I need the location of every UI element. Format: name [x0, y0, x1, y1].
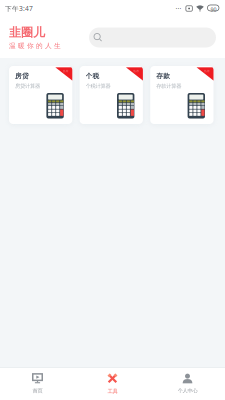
staticText: 韭圈儿 [9, 25, 45, 40]
staticText: 存款计算器 [156, 83, 181, 89]
staticText: 首页 [32, 387, 42, 394]
button[interactable]: 个人中心 [150, 368, 225, 400]
button[interactable]: 热荐 [150, 66, 213, 124]
staticText: ··· [176, 4, 182, 13]
staticText: 个税计算器 [86, 83, 111, 89]
staticText: 热荐 [133, 69, 139, 73]
staticText: 个人中心 [177, 387, 197, 394]
staticText: 存款 [156, 72, 170, 80]
staticText: 温 暖 你 的 人 生 [9, 42, 61, 50]
staticText: 房贷计算器 [15, 83, 40, 89]
staticText: 工具 [107, 388, 117, 395]
staticText: 90 [210, 6, 216, 13]
staticText: 热荐 [204, 69, 210, 73]
button[interactable]: 首页 [0, 368, 75, 400]
button[interactable]: 热荐 [80, 66, 143, 124]
staticText: 热荐 [63, 69, 69, 73]
staticText: 个税 [86, 72, 100, 80]
button[interactable]: 热荐 [9, 66, 72, 124]
staticText: 下午3:47 [5, 4, 33, 13]
button[interactable]: 工具 [75, 368, 150, 400]
button[interactable]: 搜索 [89, 27, 216, 47]
staticText: 房贷 [15, 72, 29, 80]
